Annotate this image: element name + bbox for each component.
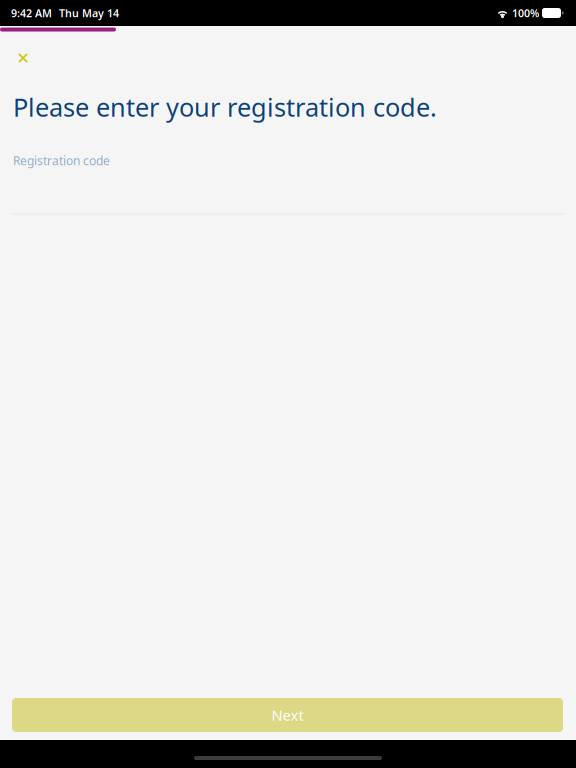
- staticText: Registration code: [13, 153, 110, 168]
- staticText: Next: [271, 705, 303, 725]
- staticText: 9:42 AM: [11, 6, 52, 20]
- button[interactable]: Next: [12, 698, 563, 732]
- button[interactable]: Registration code: [12, 139, 564, 215]
- button[interactable]: Close: [0, 32, 42, 78]
- staticText: 100%: [512, 6, 539, 20]
- staticText: Thu May 14: [59, 6, 119, 20]
- staticText: Please enter your registration code.: [13, 90, 437, 124]
